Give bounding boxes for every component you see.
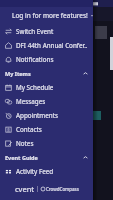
staticText: Notifications [16,55,54,64]
staticText: Notes [16,139,34,148]
button[interactable]: Switch Event [0,24,93,38]
button[interactable]: Event Guide [0,150,93,164]
button[interactable]: Notifications [0,52,93,66]
staticText: Contacts [16,125,42,134]
staticText: Activity Feed [16,167,54,176]
button[interactable]: Notes [0,136,93,150]
button[interactable]: Log in for more features! [0,7,93,24]
button[interactable]: Appointments [0,108,93,122]
button[interactable]: DFI 44th Annual Confer.. [0,38,93,52]
staticText: cvent [15,184,34,194]
button[interactable]: My Items [0,66,93,80]
staticText: My Schedule [16,83,54,92]
button[interactable]: Contacts [0,122,93,136]
button[interactable]: My Schedule [0,80,93,94]
button[interactable]: Activity Feed [0,164,93,178]
staticText: Appointments [16,111,58,120]
staticText: My Items [5,70,31,77]
staticText: Log in for more features! [12,11,88,20]
staticText: DFI 44th Annual Confer.. [16,41,88,50]
staticText: Messages [16,97,46,106]
button[interactable]: Messages [0,94,93,108]
staticText: Event Guide [5,154,38,161]
staticText: CrowdCompass [46,186,79,192]
staticText: Switch Event [16,27,54,36]
